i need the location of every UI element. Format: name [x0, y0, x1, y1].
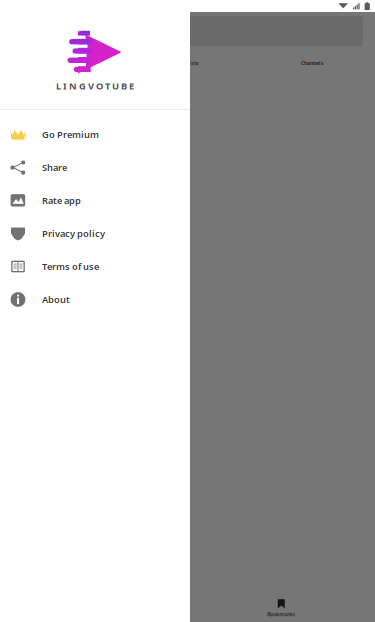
staticText: L I N G V O T U B E — [56, 80, 134, 92]
staticText: Share — [42, 161, 67, 174]
button[interactable]: Share — [0, 151, 190, 184]
staticText: Bookmarks — [267, 611, 295, 618]
staticText: Playlists — [176, 59, 199, 67]
button[interactable]: Channels — [250, 50, 375, 76]
staticText: Channels — [301, 59, 324, 67]
staticText: Privacy policy — [42, 227, 105, 240]
staticText: Go Premium — [42, 128, 99, 141]
staticText: Videos — [54, 59, 71, 67]
button[interactable]: About — [0, 283, 190, 316]
button[interactable]: Rate app — [0, 184, 190, 217]
staticText: Terms of use — [42, 260, 99, 273]
button[interactable]: Videos — [0, 50, 125, 76]
button[interactable]: Bookmarks — [187, 595, 375, 622]
button[interactable]: Go Premium — [0, 118, 190, 151]
staticText: Rate app — [42, 194, 81, 207]
staticText: About — [42, 293, 70, 306]
button[interactable]: Privacy policy — [0, 217, 190, 250]
button[interactable]: Playlists — [125, 50, 250, 76]
button[interactable]: Terms of use — [0, 250, 190, 283]
